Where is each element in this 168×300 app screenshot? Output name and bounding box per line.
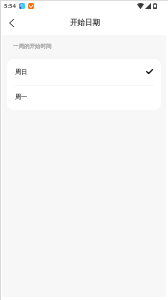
button[interactable]: 周一 [7, 86, 161, 110]
staticText: 周日 [15, 68, 27, 76]
staticText: 一周的开始时间 [13, 43, 52, 50]
staticText: 5:54 [4, 2, 16, 10]
staticText: 开始日期 [70, 18, 100, 27]
button[interactable]: 周日 [7, 59, 161, 85]
staticText: 周一 [15, 93, 27, 101]
other: Notification [28, 3, 34, 9]
other: Notification [19, 3, 25, 9]
button[interactable]: Back [0, 11, 23, 34]
